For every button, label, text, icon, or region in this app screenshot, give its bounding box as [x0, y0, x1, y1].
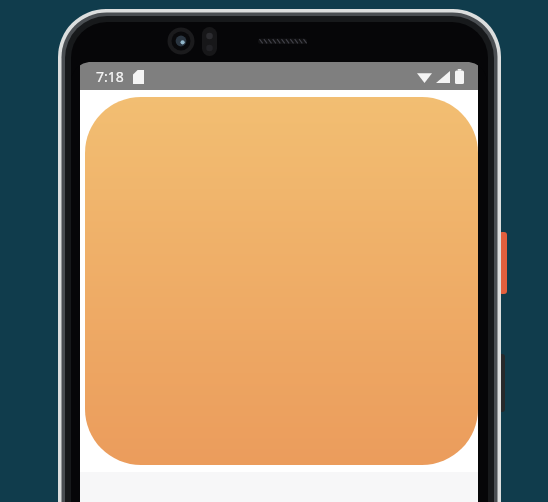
staticText: 7:18: [96, 67, 124, 86]
other: Signal: [436, 71, 450, 83]
other: SD card: [133, 70, 144, 84]
other: Battery: [455, 69, 464, 84]
button[interactable]: [85, 97, 478, 465]
other: Wi-Fi: [417, 71, 432, 83]
